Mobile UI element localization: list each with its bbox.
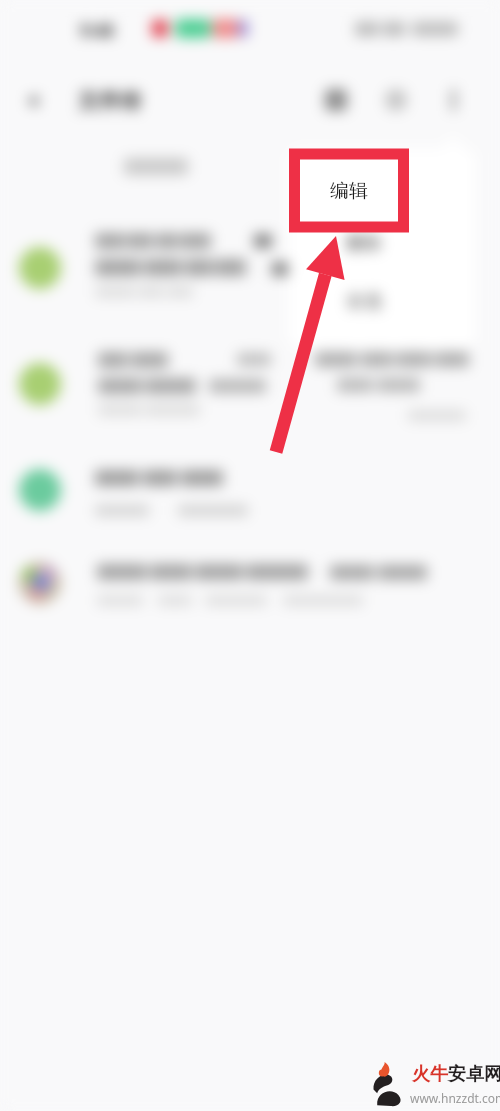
button[interactable]: 编辑 [300, 159, 398, 222]
staticText: 9:48 [80, 19, 114, 42]
staticText: 火牛 [412, 1063, 448, 1086]
staticText: 删除 [346, 232, 382, 255]
staticText: 编辑 [330, 179, 368, 203]
button[interactable]: Search [385, 89, 407, 111]
staticText: 编辑 [346, 174, 382, 197]
button[interactable]: Back [28, 94, 48, 108]
button[interactable]: More [451, 89, 456, 111]
button[interactable]: 编辑 [288, 148, 476, 348]
staticText: www.hnzzdt.com [410, 1090, 500, 1106]
staticText: 全选 [346, 290, 382, 313]
staticText: 安卓网 [448, 1063, 500, 1086]
staticText: 文件传 [78, 88, 141, 114]
button[interactable]: Grid [325, 89, 347, 111]
